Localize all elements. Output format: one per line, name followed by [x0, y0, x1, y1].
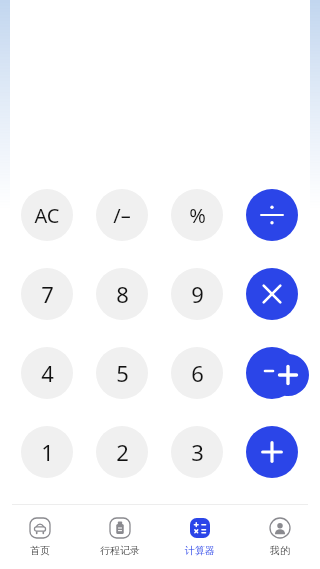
- button[interactable]: 计算器: [160, 505, 240, 569]
- button[interactable]: 行程记录: [80, 505, 160, 569]
- button[interactable]: 5: [96, 347, 148, 399]
- button[interactable]: 我的: [240, 505, 320, 569]
- button[interactable]: Plus: [246, 426, 298, 478]
- staticText: /–: [113, 202, 131, 229]
- button[interactable]: Multiply: [246, 268, 298, 320]
- staticText: 3: [191, 437, 204, 467]
- staticText: AC: [34, 202, 60, 229]
- staticText: 首页: [30, 544, 50, 557]
- button[interactable]: Divide: [246, 189, 298, 241]
- staticText: 1: [41, 437, 54, 467]
- staticText: 计算器: [185, 544, 215, 557]
- staticText: 我的: [270, 544, 290, 557]
- button[interactable]: 2: [96, 426, 148, 478]
- button[interactable]: Minus and Plus: [243, 341, 315, 405]
- button[interactable]: 7: [21, 268, 73, 320]
- staticText: 行程记录: [100, 544, 140, 557]
- button[interactable]: AC: [21, 189, 73, 241]
- button[interactable]: /–: [96, 189, 148, 241]
- staticText: 6: [191, 358, 204, 388]
- button[interactable]: 3: [171, 426, 223, 478]
- staticText: 9: [191, 279, 204, 309]
- staticText: 2: [116, 437, 129, 467]
- staticText: %: [189, 202, 206, 229]
- button[interactable]: 首页: [0, 505, 80, 569]
- button[interactable]: 8: [96, 268, 148, 320]
- button[interactable]: 1: [21, 426, 73, 478]
- staticText: 7: [41, 279, 54, 309]
- staticText: 5: [116, 358, 129, 388]
- button[interactable]: %: [171, 189, 223, 241]
- button[interactable]: 6: [171, 347, 223, 399]
- button[interactable]: 9: [171, 268, 223, 320]
- staticText: 4: [41, 358, 54, 388]
- button[interactable]: 4: [21, 347, 73, 399]
- staticText: 8: [116, 279, 129, 309]
